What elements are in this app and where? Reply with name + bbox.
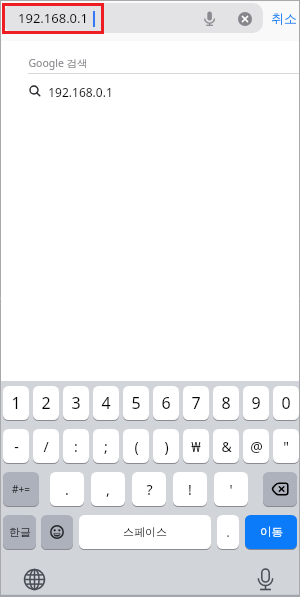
button[interactable]: 1 [3,386,29,420]
button[interactable]: 3 [63,386,89,420]
staticText: ' [229,480,233,499]
staticText: ₩ [191,437,201,456]
staticText: ! [188,480,192,499]
button[interactable] [263,472,297,506]
button[interactable] [257,568,274,591]
staticText: 스페이스 [123,525,167,539]
staticText: , [106,480,110,499]
button[interactable]: ( [123,429,149,463]
staticText: - [14,437,19,456]
button[interactable] [238,12,252,26]
staticText: 9 [251,392,261,414]
staticText: . [65,480,69,499]
button[interactable]: ) [153,429,179,463]
button[interactable]: 7 [183,386,209,420]
button[interactable]: 6 [153,386,179,420]
button[interactable]: . [50,472,84,506]
button[interactable] [24,569,45,590]
button[interactable]: @ [243,429,269,463]
staticText: Google 검색 [28,56,88,70]
button[interactable]: 한글 [3,515,36,549]
button[interactable]: 0 [273,386,299,420]
staticText: ) [164,437,169,456]
button[interactable]: : [63,429,89,463]
button[interactable]: 5 [123,386,149,420]
button[interactable]: ' [214,472,248,506]
button[interactable]: ; [93,429,119,463]
staticText: 이동 [260,525,283,539]
button[interactable] [41,515,73,549]
button[interactable]: & [213,429,239,463]
staticText: 4 [101,392,111,414]
button[interactable]: ! [173,472,207,506]
staticText: " [283,437,289,456]
staticText: : [74,437,78,456]
staticText: 7 [191,392,201,414]
staticText: 192.168.0.1 [18,9,88,27]
staticText: ; [104,437,108,456]
button[interactable]: 이동 [245,515,297,549]
staticText: ? [146,480,153,499]
button[interactable]: 4 [93,386,119,420]
button[interactable]: #+= [3,472,39,506]
staticText: 5 [131,392,141,414]
staticText: 8 [221,392,231,414]
staticText: 한글 [9,525,31,539]
button[interactable]: 스페이스 [79,515,211,549]
button[interactable]: " [273,429,299,463]
staticText: / [43,437,49,456]
staticText: 취소 [271,10,297,26]
staticText: 0 [281,392,291,414]
button[interactable]: 8 [213,386,239,420]
staticText: #+= [12,482,30,496]
button[interactable]: 9 [243,386,269,420]
staticText: 3 [71,392,81,414]
button[interactable]: ₩ [183,429,209,463]
staticText: & [221,437,232,456]
button[interactable]: 취소 [267,3,300,33]
staticText: ( [134,437,139,456]
staticText: @ [250,437,263,456]
staticText: 2 [41,392,51,414]
staticText: . [226,524,230,540]
button[interactable] [4,3,263,33]
button[interactable]: - [3,429,29,463]
button[interactable]: ? [132,472,166,506]
button[interactable]: 2 [33,386,59,420]
staticText: 1 [11,392,21,414]
button[interactable]: . [217,515,239,549]
button[interactable]: 192.168.0.1 [0,78,300,106]
button[interactable] [202,11,217,26]
staticText: 192.168.0.1 [48,84,113,100]
button[interactable]: / [33,429,59,463]
button[interactable]: , [91,472,125,506]
staticText: 6 [161,392,171,414]
